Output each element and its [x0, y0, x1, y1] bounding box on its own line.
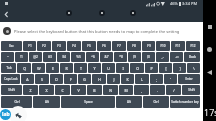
staticText: . [157, 88, 158, 93]
staticText: 3:34 PM [182, 1, 198, 6]
button[interactable]: #3 [43, 52, 56, 62]
button[interactable]: ~ [1, 52, 14, 62]
button[interactable]: Back [1, 9, 12, 20]
button[interactable]: T [74, 63, 87, 73]
button[interactable]: Y [88, 63, 101, 73]
button[interactable]: F8 [127, 41, 141, 51]
button[interactable]: O [130, 63, 144, 73]
button[interactable]: += [170, 52, 183, 62]
button[interactable]: F7 [112, 41, 126, 51]
button[interactable]: F5 [82, 41, 96, 51]
staticText: B [93, 88, 96, 93]
button[interactable]: V [71, 85, 86, 95]
button[interactable]: K [121, 74, 134, 84]
button[interactable]: Esc [1, 41, 22, 51]
staticText: F4 [72, 44, 76, 48]
button[interactable]: Ctrl [143, 96, 169, 108]
button[interactable]: Mapped button [99, 10, 105, 16]
staticText: Shift [188, 88, 195, 92]
button[interactable]: (9 [128, 52, 141, 62]
button[interactable]: U [102, 63, 115, 73]
button[interactable]: Back [184, 52, 200, 62]
button[interactable]: P [145, 63, 158, 73]
button[interactable]: M [119, 85, 133, 95]
button[interactable]: F [64, 74, 77, 84]
button[interactable]: Tab [1, 63, 16, 73]
button[interactable]: Ctrl [1, 96, 32, 108]
button[interactable]: Shift [182, 85, 200, 95]
button[interactable]: ; [150, 74, 163, 84]
button[interactable]: G [78, 74, 91, 84]
button[interactable]: F6 [97, 41, 111, 51]
button[interactable]: *8 [114, 52, 127, 62]
button[interactable]: ' [164, 74, 177, 84]
button[interactable]: Alt [33, 96, 60, 108]
button[interactable]: Home [204, 44, 215, 55]
staticText: T [80, 66, 82, 71]
button[interactable]: B [87, 85, 102, 95]
staticText: A [26, 77, 29, 82]
button[interactable]: Space [61, 96, 115, 108]
staticText: F1 [28, 44, 32, 48]
button[interactable]: [ [159, 63, 172, 73]
button[interactable]: / [166, 85, 181, 95]
button[interactable]: F9 [142, 41, 155, 51]
button[interactable]: R [60, 63, 73, 73]
staticText: @2 [33, 55, 38, 59]
button[interactable]: C [55, 85, 70, 95]
button[interactable]: . [150, 85, 165, 95]
button[interactable]: F11 [171, 41, 185, 51]
button[interactable]: S [35, 74, 49, 84]
button[interactable]: I [116, 63, 129, 73]
button[interactable]: ^6 [86, 52, 99, 62]
staticText: R [65, 66, 68, 71]
button[interactable]: Caps Lock [1, 74, 20, 84]
button[interactable]: F3 [52, 41, 66, 51]
button[interactable]: @2 [29, 52, 42, 62]
staticText: I [122, 66, 124, 71]
button[interactable]: )0 [142, 52, 155, 62]
button[interactable]: F10 [156, 41, 170, 51]
button[interactable]: N [103, 85, 118, 95]
button[interactable]: Mapped button [130, 10, 136, 16]
button[interactable]: A [21, 74, 34, 84]
button[interactable]: ] [173, 63, 186, 73]
button[interactable]: Switch number key [170, 96, 200, 108]
button[interactable]: F12 [186, 41, 200, 51]
button[interactable]: Back [204, 67, 215, 78]
button[interactable]: &7 [100, 52, 113, 62]
button[interactable]: Recents [204, 21, 215, 32]
staticText: Space [84, 100, 93, 104]
button[interactable]: F1 [23, 41, 36, 51]
button[interactable]: W [32, 63, 45, 73]
button[interactable]: H [92, 74, 106, 84]
staticText: E [52, 66, 54, 71]
button[interactable]: F2 [37, 41, 51, 51]
button[interactable]: %5 [71, 52, 85, 62]
button[interactable]: L [135, 74, 149, 84]
staticText: Please select the keyboard button that t… [14, 29, 180, 34]
staticText: ' [170, 77, 171, 82]
button[interactable]: !1 [15, 52, 28, 62]
button[interactable]: Enter [178, 74, 200, 84]
button[interactable]: F4 [67, 41, 81, 51]
button[interactable]: Shift [1, 85, 22, 95]
staticText: F8 [132, 44, 136, 48]
button[interactable]: $4 [57, 52, 70, 62]
button[interactable]: D [50, 74, 63, 84]
staticText: += [175, 55, 179, 59]
button[interactable]: X [39, 85, 54, 95]
button[interactable]: Z [23, 85, 38, 95]
button[interactable]: Alt [116, 96, 142, 108]
staticText: F12 [190, 44, 196, 48]
button[interactable]: Mapped button [66, 10, 72, 16]
button[interactable]: J [107, 74, 120, 84]
staticText: Ctrl [14, 100, 20, 104]
staticText: &7 [104, 55, 109, 59]
button[interactable]: Q [17, 63, 31, 73]
button[interactable]: E [46, 63, 59, 73]
button[interactable]: \ [187, 63, 200, 73]
button[interactable]: , [134, 85, 149, 95]
staticText: V [77, 88, 80, 93]
button[interactable]: _- [156, 52, 169, 62]
